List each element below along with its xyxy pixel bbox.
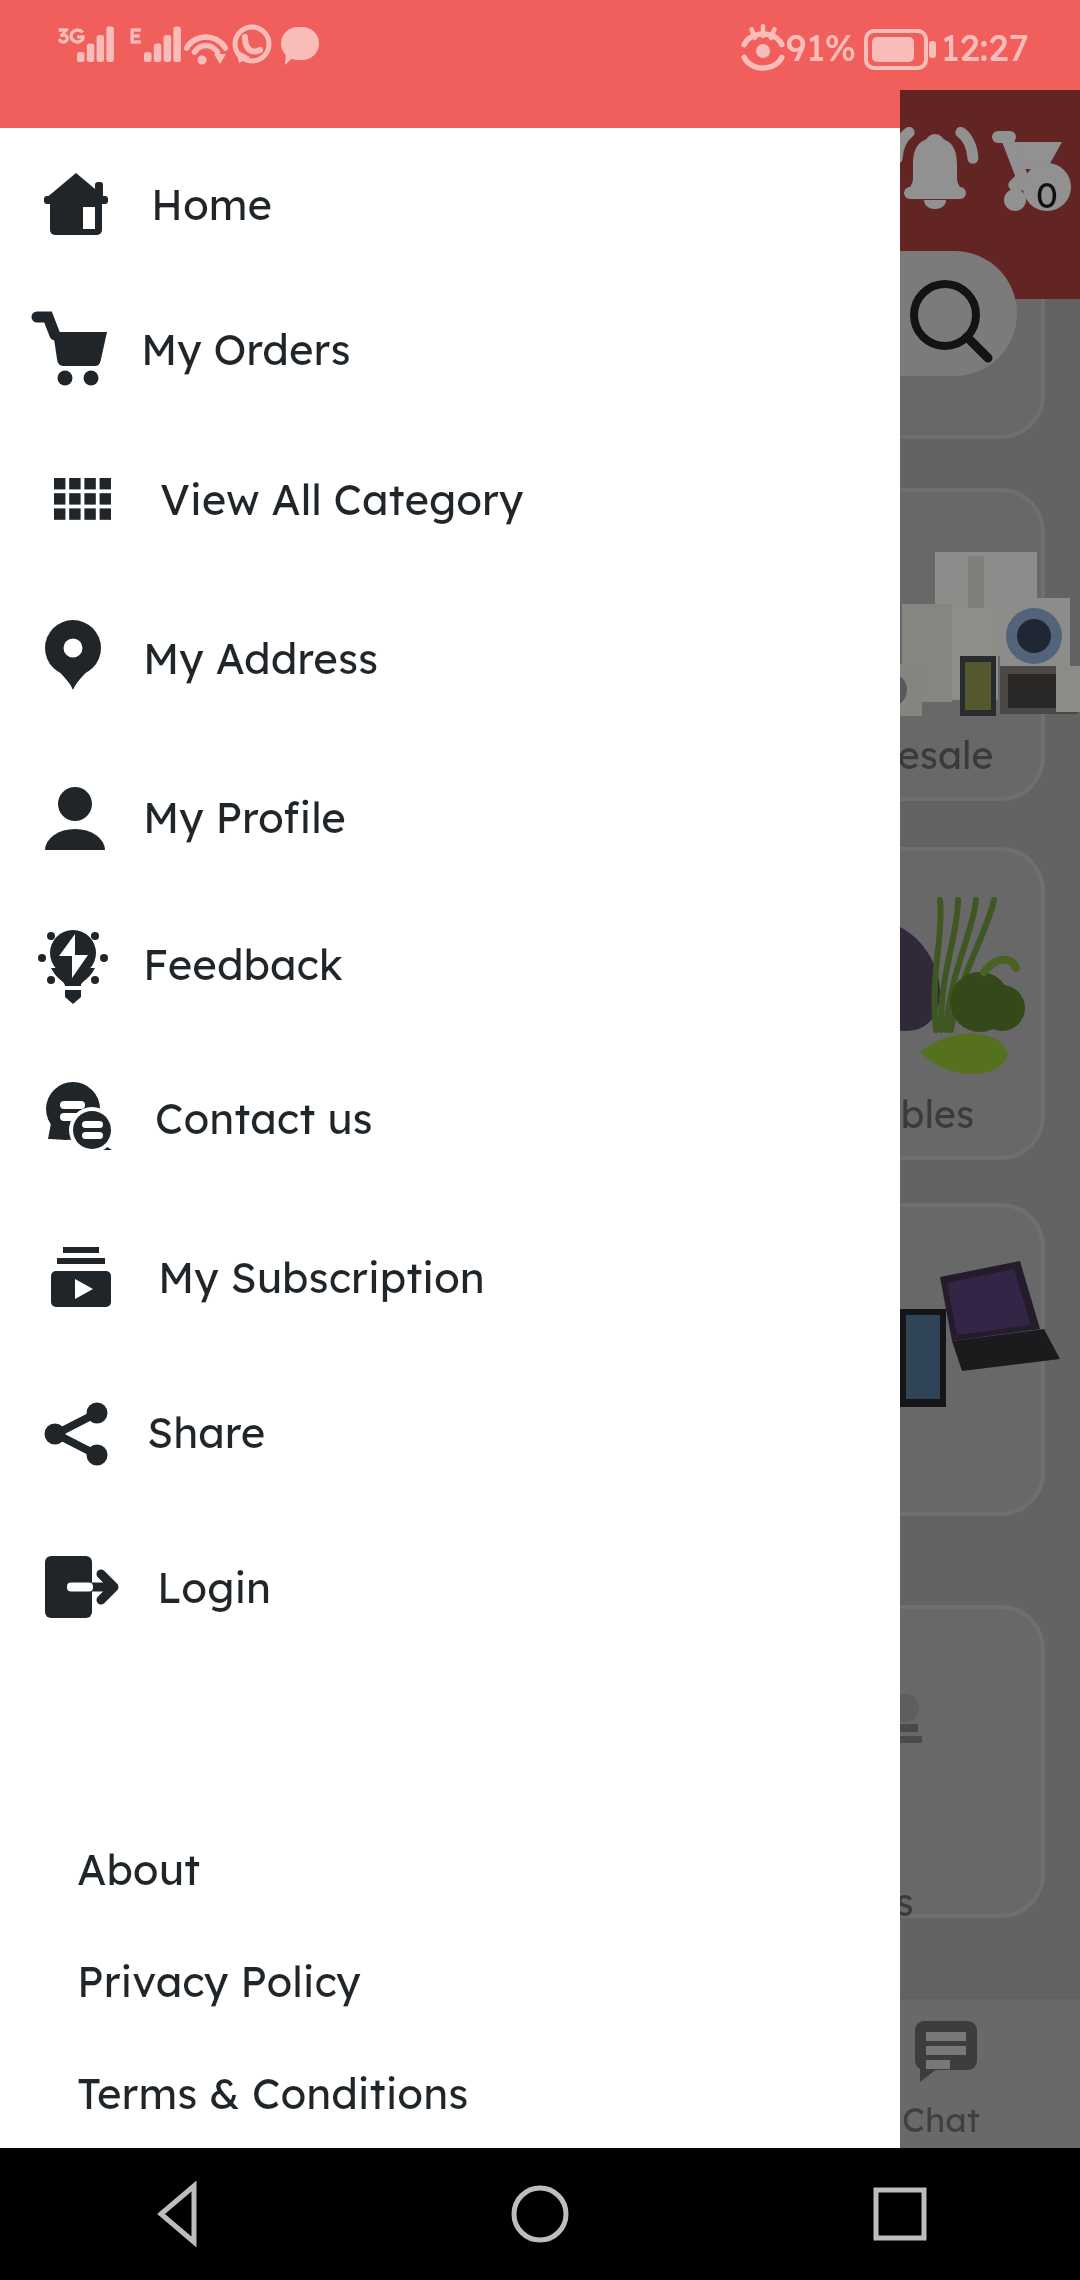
- staticText: 12:27: [941, 24, 1029, 70]
- staticText: Fruits & Vegetables: [547, 1090, 1041, 1138]
- staticText: 0: [1036, 172, 1058, 217]
- button[interactable]: Contact us: [0, 1046, 900, 1190]
- button[interactable]: Chat: [900, 2000, 1080, 2148]
- staticText: Home: [151, 178, 273, 231]
- staticText: About: [77, 1843, 201, 1896]
- button[interactable]: My Address: [0, 586, 900, 730]
- button[interactable]: Terms & Conditions: [0, 2037, 900, 2149]
- staticText: View All Category: [160, 473, 524, 526]
- button[interactable]: View All Category: [0, 427, 900, 571]
- staticText: Terms & Conditions: [77, 2067, 469, 2120]
- staticText: Health & Supplements: [547, 1834, 1041, 1926]
- staticText: Laptops & Tablets: [547, 1436, 1041, 1528]
- staticText: 3G: [58, 22, 86, 48]
- staticText: Privacy Policy: [77, 1955, 361, 2008]
- staticText: E: [129, 22, 142, 48]
- staticText: Login: [157, 1561, 272, 1614]
- staticText: Chat: [902, 2098, 980, 2141]
- staticText: My Profile: [143, 791, 346, 844]
- button[interactable]: Recent apps: [720, 2148, 1080, 2280]
- staticText: Contact us: [155, 1092, 373, 1145]
- staticText: Feedback: [143, 938, 343, 991]
- button[interactable]: Privacy Policy: [0, 1925, 900, 2037]
- staticText: Share: [147, 1406, 266, 1459]
- button[interactable]: Home: [360, 2148, 720, 2280]
- staticText: Electronics Wholesale: [547, 731, 1041, 779]
- staticText: My Orders: [141, 323, 351, 376]
- button[interactable]: My Subscription: [0, 1205, 900, 1349]
- staticText: 91%: [786, 24, 856, 70]
- button[interactable]: About: [0, 1813, 900, 1925]
- button[interactable]: Feedback: [0, 892, 900, 1036]
- button[interactable]: Back: [0, 2148, 360, 2280]
- staticText: My Subscription: [158, 1251, 485, 1304]
- button[interactable]: My Profile: [0, 745, 900, 889]
- button[interactable]: My Orders: [0, 277, 900, 421]
- button[interactable]: Share: [0, 1360, 900, 1504]
- button[interactable]: Login: [0, 1515, 900, 1659]
- button[interactable]: Home: [0, 132, 900, 276]
- staticText: My Address: [143, 632, 379, 685]
